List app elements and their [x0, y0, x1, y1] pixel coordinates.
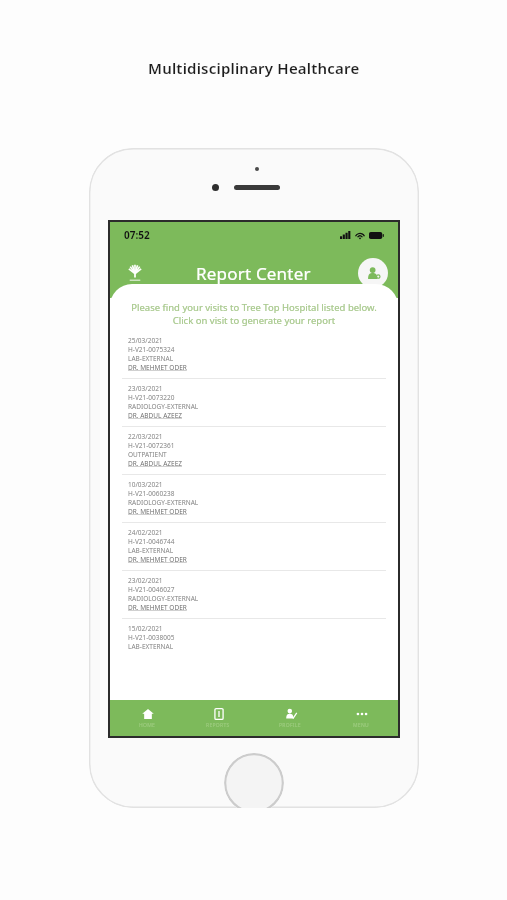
- staticText: DR. ABDUL AZEEZ: [128, 411, 183, 420]
- staticText: H-V21-0038005: [128, 633, 175, 642]
- staticText: Multidisciplinary Healthcare: [148, 58, 360, 78]
- button[interactable]: PROFILE: [255, 700, 325, 736]
- staticText: PROFILE: [279, 722, 301, 729]
- staticText: 24/02/2021: [128, 528, 163, 537]
- button[interactable]: MENU: [326, 700, 396, 736]
- staticText: REPORTS: [206, 722, 230, 729]
- button[interactable]: 23/02/2021: [110, 571, 398, 618]
- staticText: LAB-EXTERNAL: [128, 546, 174, 555]
- button[interactable]: 15/02/2021: [110, 619, 398, 657]
- staticText: 22/03/2021: [128, 432, 163, 441]
- staticText: 07:52: [124, 228, 150, 242]
- button[interactable]: HOME: [112, 700, 182, 736]
- staticText: RADIOLOGY-EXTERNAL: [128, 402, 199, 411]
- staticText: H-V21-0073220: [128, 393, 175, 402]
- staticText: LAB-EXTERNAL: [128, 354, 174, 363]
- button[interactable]: Profile: [358, 258, 388, 288]
- button[interactable]: 24/02/2021: [110, 523, 398, 570]
- staticText: 25/03/2021: [128, 336, 163, 345]
- staticText: MENU: [353, 722, 369, 729]
- staticText: Report Center: [196, 262, 311, 285]
- staticText: 10/03/2021: [128, 480, 163, 489]
- button[interactable]: REPORTS: [183, 700, 253, 736]
- staticText: 23/03/2021: [128, 384, 163, 393]
- staticText: DR. MEHMET ODER: [128, 603, 187, 612]
- staticText: DR. MEHMET ODER: [128, 363, 187, 372]
- staticText: 23/02/2021: [128, 576, 163, 585]
- staticText: 15/02/2021: [128, 624, 163, 633]
- staticText: HOME: [139, 722, 156, 729]
- staticText: H-V21-0075324: [128, 345, 175, 354]
- staticText: H-V21-0072361: [128, 441, 175, 450]
- staticText: DR. MEHMET ODER: [128, 555, 187, 564]
- button[interactable]: 22/03/2021: [110, 427, 398, 474]
- staticText: LAB-EXTERNAL: [128, 642, 174, 651]
- staticText: OUTPATIENT: [128, 450, 167, 459]
- staticText: Please find your visits to Tree Top Hosp…: [128, 301, 380, 327]
- button[interactable]: Tree Top Hospital logo: [120, 258, 150, 288]
- staticText: DR. MEHMET ODER: [128, 507, 187, 516]
- staticText: H-V21-0060238: [128, 489, 175, 498]
- staticText: RADIOLOGY-EXTERNAL: [128, 594, 199, 603]
- staticText: H-V21-0046744: [128, 537, 175, 546]
- staticText: H-V21-0046027: [128, 585, 175, 594]
- button[interactable]: 10/03/2021: [110, 475, 398, 522]
- staticText: RADIOLOGY-EXTERNAL: [128, 498, 199, 507]
- staticText: DR. ABDUL AZEEZ: [128, 459, 183, 468]
- button[interactable]: 23/03/2021: [110, 379, 398, 426]
- button[interactable]: 25/03/2021: [110, 331, 398, 378]
